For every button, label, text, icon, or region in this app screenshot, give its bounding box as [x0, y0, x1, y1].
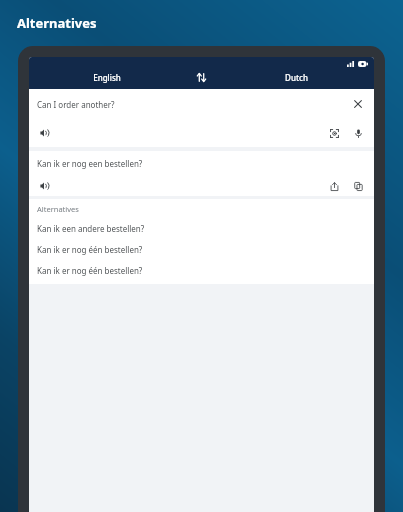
button[interactable]: Copy: [349, 177, 367, 195]
staticText: Dutch: [285, 72, 308, 83]
button[interactable]: Listen to translation: [36, 177, 54, 195]
staticText: Kan ik er nog een bestellen?: [37, 158, 143, 169]
button[interactable]: English: [29, 70, 184, 84]
button[interactable]: Translate with camera: [325, 124, 343, 142]
staticText: Kan ik er nog één bestellen?: [37, 244, 143, 255]
button[interactable]: Swap languages: [184, 69, 218, 85]
staticText: Alternatives: [17, 14, 97, 32]
staticText: Can I order another?: [37, 99, 349, 110]
button[interactable]: Microphone: [349, 124, 367, 142]
button[interactable]: Listen: [36, 124, 54, 142]
button[interactable]: Share: [325, 177, 343, 195]
staticText: Alternatives: [37, 204, 79, 214]
button[interactable]: Dutch: [218, 70, 374, 84]
button[interactable]: Kan ik een andere bestellen?: [29, 218, 374, 239]
staticText: Kan ik een andere bestellen?: [37, 223, 145, 234]
button[interactable]: Kan ik er nog één bestellen?: [29, 260, 374, 281]
button[interactable]: Kan ik er nog één bestellen?: [29, 239, 374, 260]
button[interactable]: Clear: [349, 95, 367, 113]
staticText: English: [93, 72, 121, 83]
staticText: Kan ik er nog één bestellen?: [37, 265, 143, 276]
